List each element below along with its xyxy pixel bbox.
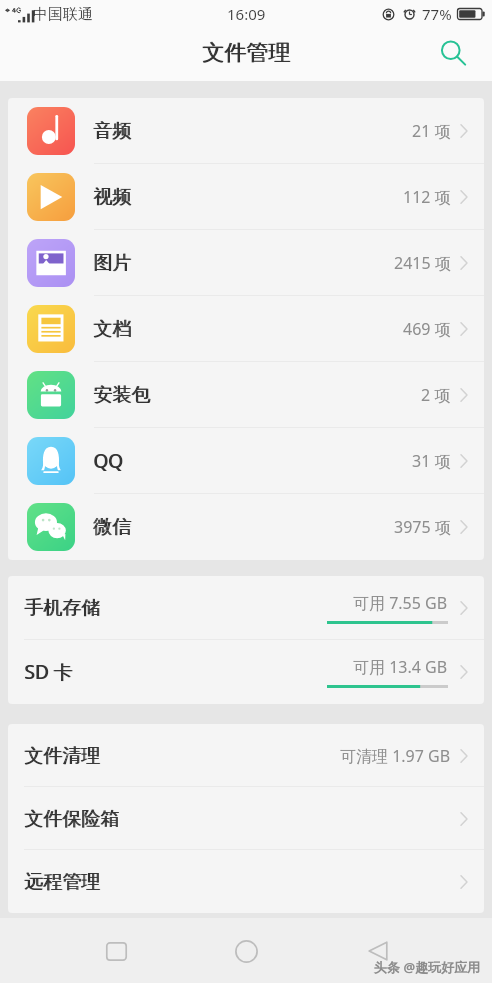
staticText: 31 项 bbox=[412, 450, 451, 472]
button[interactable]: 手机存储 bbox=[8, 576, 484, 640]
button[interactable]: 视频 bbox=[8, 164, 484, 230]
staticText: QQ bbox=[94, 448, 124, 474]
staticText: 音频 bbox=[94, 119, 132, 143]
staticText: 中国联通 bbox=[33, 5, 93, 24]
button[interactable]: 图片 bbox=[8, 230, 484, 296]
button[interactable]: 音频 bbox=[8, 98, 484, 164]
staticText: 安装包 bbox=[93, 383, 150, 407]
button[interactable]: 文件保险箱 bbox=[8, 787, 484, 850]
staticText: 文件保险箱 bbox=[24, 807, 119, 831]
staticText: 图片 bbox=[94, 251, 132, 275]
staticText: 文档 bbox=[93, 317, 131, 341]
staticText: 文件保险箱 bbox=[25, 807, 120, 831]
staticText: 3975 项 bbox=[394, 516, 451, 538]
staticText: 2415 项 bbox=[394, 252, 451, 274]
staticText: 远程管理 bbox=[25, 870, 101, 894]
staticText: 文件管理 bbox=[202, 39, 290, 67]
button[interactable]: QQ bbox=[8, 428, 484, 494]
staticText: 手机存储 bbox=[24, 596, 100, 620]
staticText: 视频 bbox=[94, 185, 132, 209]
button[interactable]: Back bbox=[350, 923, 406, 979]
staticText: 2 项 bbox=[421, 384, 451, 406]
staticText: 微信 bbox=[94, 515, 132, 539]
staticText: 112 项 bbox=[403, 186, 451, 208]
staticText: 头条 @趣玩好应用 bbox=[374, 958, 481, 976]
button[interactable]: 文档 bbox=[8, 296, 484, 362]
staticText: 可清理 1.97 GB bbox=[340, 745, 451, 767]
staticText: 21 项 bbox=[412, 120, 451, 142]
staticText: 图片 bbox=[93, 251, 131, 275]
staticText: 手机存储 bbox=[25, 596, 101, 620]
staticText: 16:09 bbox=[227, 4, 266, 24]
staticText: 文件清理 bbox=[25, 744, 101, 768]
button[interactable]: SD 卡 bbox=[8, 640, 484, 704]
staticText: 安装包 bbox=[94, 383, 151, 407]
staticText: 77% bbox=[422, 4, 452, 24]
staticText: 音频 bbox=[93, 119, 131, 143]
staticText: 可用 13.4 GB bbox=[353, 656, 448, 678]
button[interactable]: 远程管理 bbox=[8, 850, 484, 913]
button[interactable]: Recents bbox=[88, 923, 144, 979]
button[interactable]: Search bbox=[432, 32, 474, 74]
staticText: QQ bbox=[93, 448, 123, 474]
staticText: 文件清理 bbox=[24, 744, 100, 768]
staticText: 微信 bbox=[93, 515, 131, 539]
staticText: 469 项 bbox=[403, 318, 451, 340]
staticText: 远程管理 bbox=[24, 870, 100, 894]
button[interactable]: 文件清理 bbox=[8, 724, 484, 787]
button[interactable]: 微信 bbox=[8, 494, 484, 560]
button[interactable]: Home bbox=[218, 923, 274, 979]
staticText: 可用 7.55 GB bbox=[353, 592, 448, 614]
staticText: SD 卡 bbox=[25, 659, 74, 685]
staticText: 文件管理 bbox=[203, 39, 291, 67]
button[interactable]: 安装包 bbox=[8, 362, 484, 428]
staticText: 视频 bbox=[93, 185, 131, 209]
staticText: 文档 bbox=[94, 317, 132, 341]
staticText: SD 卡 bbox=[24, 659, 73, 685]
